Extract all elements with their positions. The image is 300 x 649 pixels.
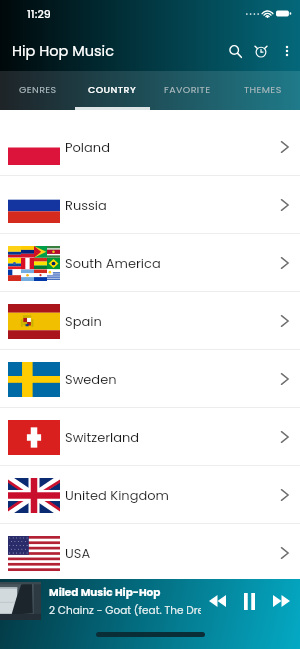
staticText: United Kingdom	[65, 486, 278, 504]
staticText: Poland	[65, 138, 278, 156]
button[interactable]: GENRES	[0, 71, 75, 110]
button[interactable]: COUNTRY	[75, 71, 150, 110]
button[interactable]: THEMES	[225, 71, 300, 110]
button[interactable]: South America	[0, 234, 300, 292]
staticText: GENRES	[19, 83, 57, 96]
staticText: Spain	[65, 312, 278, 330]
button[interactable]: Spain	[0, 292, 300, 350]
button[interactable]: Russia	[0, 176, 300, 234]
staticText: FAVORITE	[164, 83, 211, 96]
button[interactable]: Sweden	[0, 350, 300, 408]
staticText: THEMES	[244, 83, 282, 96]
button[interactable]: USA	[0, 524, 300, 582]
button[interactable]: Rewind	[201, 583, 233, 619]
staticText: COUNTRY	[88, 83, 137, 96]
button[interactable]: Search	[222, 33, 248, 69]
button[interactable]: Alarm	[248, 33, 274, 69]
button[interactable]: United Kingdom	[0, 466, 300, 524]
button[interactable]: Fast forward	[265, 583, 297, 619]
button[interactable]: FAVORITE	[150, 71, 225, 110]
staticText: Switzerland	[65, 428, 278, 446]
button[interactable]: Pause	[233, 583, 265, 619]
staticText: 11:29	[27, 6, 51, 21]
staticText: Miled Music Hip-Hop	[49, 585, 161, 600]
staticText: 2 Chainz - Goat (feat. The Dream)	[49, 603, 201, 618]
staticText: Sweden	[65, 370, 278, 388]
button[interactable]: Switzerland	[0, 408, 300, 466]
staticText: USA	[65, 544, 278, 562]
button[interactable]: Poland	[0, 118, 300, 176]
staticText: Hip Hop Music	[12, 41, 114, 61]
staticText: Russia	[65, 196, 278, 214]
button[interactable]: More options	[274, 33, 300, 69]
staticText: South America	[65, 254, 278, 272]
